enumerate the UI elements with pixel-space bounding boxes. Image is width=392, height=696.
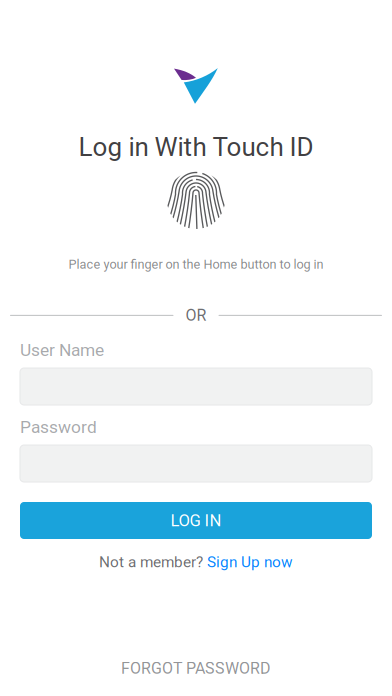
staticText: Not a member? bbox=[99, 553, 203, 571]
staticText: Password bbox=[20, 417, 97, 437]
staticText: OR bbox=[185, 306, 206, 325]
button[interactable]: FORGOT PASSWORD bbox=[0, 659, 392, 678]
staticText: Sign Up now bbox=[207, 553, 293, 571]
staticText: FORGOT PASSWORD bbox=[121, 659, 271, 678]
staticText: Log in With Touch ID bbox=[78, 132, 313, 162]
staticText: LOG IN bbox=[170, 511, 221, 530]
staticText: Place your finger on the Home button to … bbox=[68, 257, 323, 272]
staticText: User Name bbox=[20, 340, 104, 360]
button[interactable]: Sign Up now bbox=[207, 553, 293, 571]
button[interactable]: LOG IN bbox=[20, 502, 372, 539]
